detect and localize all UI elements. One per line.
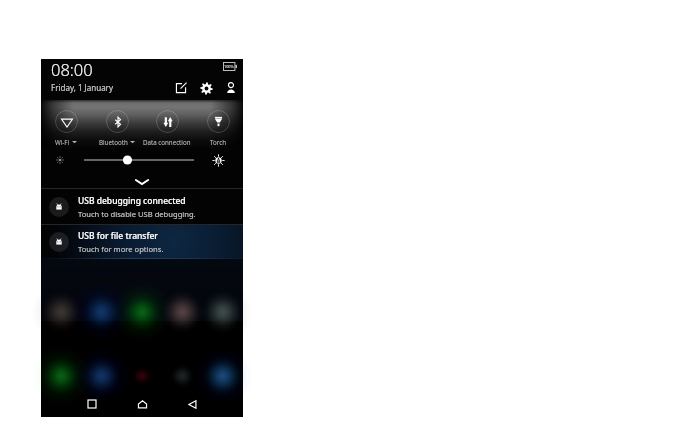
staticText: USB for file transfer bbox=[78, 230, 158, 242]
staticText: USB debugging connected bbox=[78, 195, 186, 207]
staticText: Torch bbox=[210, 138, 226, 146]
button[interactable]: Brightness slider bbox=[84, 153, 194, 167]
button[interactable]: User profile bbox=[221, 78, 241, 98]
button[interactable]: USB for file transfer bbox=[41, 225, 243, 259]
button[interactable]: Low brightness bbox=[54, 154, 66, 166]
button[interactable]: Settings bbox=[196, 78, 216, 98]
button[interactable]: Home bbox=[131, 393, 153, 415]
staticText: Wi-Fi bbox=[55, 138, 70, 146]
button[interactable]: Back bbox=[181, 393, 203, 415]
button[interactable]: USB debugging connected bbox=[41, 189, 243, 224]
staticText: Touch for more options. bbox=[78, 244, 164, 254]
button[interactable]: Expand quick settings bbox=[41, 172, 243, 188]
button[interactable]: Bluetooth bbox=[92, 100, 142, 148]
staticText: 100% bbox=[224, 64, 234, 69]
staticText: Bluetooth bbox=[99, 138, 128, 146]
button[interactable]: Auto brightness bbox=[212, 154, 224, 166]
button[interactable]: Torch bbox=[193, 100, 243, 148]
button[interactable]: Edit quick settings bbox=[171, 78, 191, 98]
button[interactable]: Wi-Fi bbox=[41, 100, 91, 148]
staticText: 08:00 bbox=[51, 58, 93, 80]
staticText: Data connection bbox=[143, 138, 191, 146]
staticText: Touch to disable USB debugging. bbox=[78, 209, 196, 219]
button[interactable]: Data connection bbox=[142, 100, 192, 148]
button[interactable]: Recents bbox=[81, 393, 103, 415]
staticText: Friday, 1 January bbox=[51, 82, 113, 93]
